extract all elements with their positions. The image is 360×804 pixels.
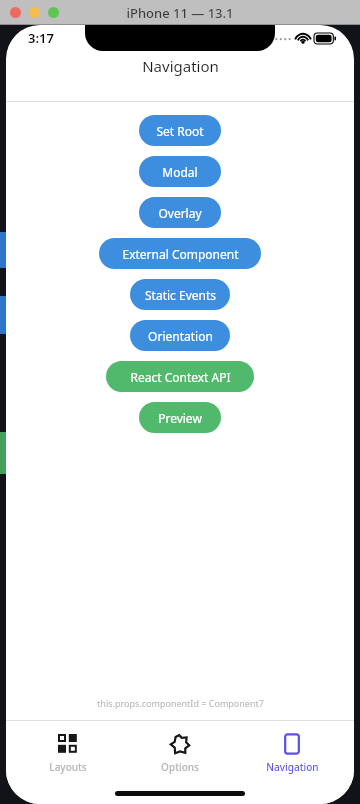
staticText: Set Root bbox=[156, 123, 204, 139]
staticText: Orientation bbox=[148, 328, 213, 344]
staticText: iPhone 11 — 13.1 bbox=[126, 4, 234, 22]
button[interactable]: Options bbox=[130, 732, 230, 774]
other: Layouts bbox=[58, 734, 78, 754]
button[interactable] bbox=[48, 7, 59, 18]
staticText: React Context API bbox=[130, 369, 231, 385]
button[interactable]: React Context API bbox=[106, 361, 254, 392]
button[interactable] bbox=[29, 7, 40, 18]
staticText: Layouts bbox=[49, 760, 87, 774]
button[interactable]: Layouts bbox=[18, 732, 118, 774]
other: Navigation bbox=[281, 733, 303, 755]
button[interactable]: Set Root bbox=[139, 115, 221, 146]
staticText: Static Events bbox=[145, 287, 216, 303]
staticText: Options bbox=[161, 760, 199, 774]
staticText: 3:17 bbox=[28, 29, 54, 47]
staticText: Navigation bbox=[266, 760, 319, 774]
staticText: this.props.componentId = Component7 bbox=[97, 697, 264, 709]
staticText: Modal bbox=[162, 164, 198, 180]
staticText: Overlay bbox=[158, 205, 202, 221]
button[interactable]: Overlay bbox=[139, 197, 221, 228]
button[interactable]: Navigation bbox=[242, 732, 342, 774]
button[interactable]: Static Events bbox=[130, 279, 230, 310]
button[interactable]: Modal bbox=[139, 156, 221, 187]
button[interactable]: Preview bbox=[139, 402, 221, 433]
staticText: Preview bbox=[158, 410, 202, 426]
button[interactable]: Orientation bbox=[130, 320, 230, 351]
staticText: Navigation bbox=[142, 56, 219, 76]
other: Options bbox=[169, 733, 191, 755]
button[interactable]: External Component bbox=[99, 238, 261, 269]
staticText: External Component bbox=[122, 246, 239, 262]
button[interactable] bbox=[10, 7, 21, 18]
